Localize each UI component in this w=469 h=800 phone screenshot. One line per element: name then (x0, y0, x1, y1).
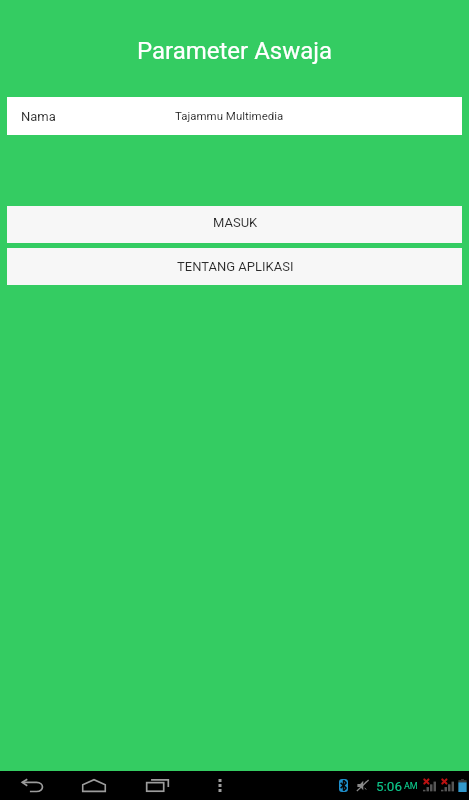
staticText: Parameter Aswaja (0, 37, 469, 65)
staticText: MASUK (213, 215, 258, 230)
staticText: Tajammu Multimedia (175, 109, 284, 122)
button[interactable]: Home (72, 771, 116, 800)
staticText: TENTANG APLIKASI (177, 259, 294, 274)
staticText: Nama (21, 109, 56, 124)
staticText: 5:06 (376, 778, 403, 794)
button[interactable]: Recent apps (135, 771, 179, 800)
button[interactable]: More options (200, 771, 240, 800)
button[interactable]: MASUK (7, 206, 462, 243)
button[interactable]: Back (11, 771, 55, 800)
staticText: AM (404, 781, 418, 792)
button[interactable]: TENTANG APLIKASI (7, 248, 462, 285)
button[interactable]: Nama (7, 97, 462, 135)
